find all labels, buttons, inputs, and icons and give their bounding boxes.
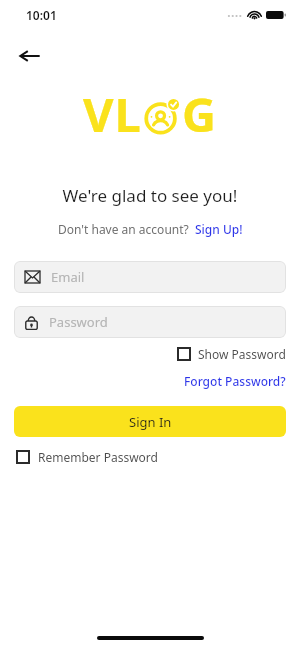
staticText: Don't have an account?	[58, 221, 189, 237]
button[interactable]: Back	[10, 36, 50, 76]
staticText: VL	[83, 82, 142, 146]
button[interactable]: Email	[14, 261, 286, 293]
staticText: 10:01	[26, 7, 57, 23]
staticText: G	[182, 82, 217, 146]
staticText: Forgot Password?	[184, 373, 286, 389]
button[interactable]: Password	[14, 306, 286, 338]
staticText: Email	[51, 268, 85, 286]
staticText: We're glad to see you!	[0, 184, 300, 207]
button[interactable]: Forgot Password?	[184, 373, 286, 389]
staticText: Show Password	[198, 346, 286, 362]
staticText: Password	[49, 313, 108, 331]
button[interactable]: Remember Password	[16, 449, 158, 465]
staticText: Sign In	[129, 413, 172, 431]
button[interactable]: Sign In	[14, 406, 286, 437]
button[interactable]: Sign Up!	[195, 221, 243, 237]
staticText: Sign Up!	[195, 221, 243, 237]
button[interactable]: Show Password	[177, 346, 286, 362]
staticText: Remember Password	[38, 449, 158, 465]
